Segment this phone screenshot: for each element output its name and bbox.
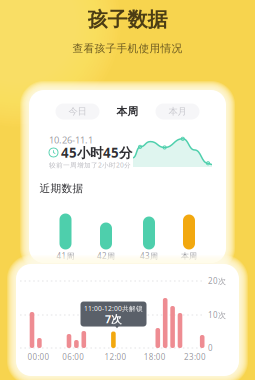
staticText: 近期数据: [39, 182, 83, 195]
button[interactable]: 今日: [55, 103, 99, 119]
staticText: 孩子数据: [87, 7, 167, 32]
staticText: 00:00: [27, 352, 49, 362]
staticText: 查看孩子手机使用情况: [72, 42, 182, 55]
staticText: 本周: [116, 105, 138, 118]
staticText: 10次: [208, 310, 226, 320]
staticText: 41周: [56, 251, 74, 261]
staticText: 18:00: [144, 352, 166, 362]
staticText: 0: [208, 343, 213, 353]
staticText: 本月: [168, 106, 186, 117]
button[interactable]: 本周: [105, 103, 149, 119]
staticText: 45小时45分: [61, 144, 132, 161]
button[interactable]: 本月: [155, 103, 199, 119]
staticText: 23:00: [184, 352, 206, 362]
staticText: 本周: [181, 251, 197, 261]
staticText: 7次: [105, 312, 122, 326]
staticText: 今日: [68, 106, 86, 117]
staticText: 06:00: [62, 352, 84, 362]
staticText: 12:00: [104, 352, 126, 362]
staticText: 较前一周增加了2小时20分: [49, 161, 131, 169]
staticText: 42周: [97, 251, 115, 261]
staticText: 10.26-11.1: [49, 134, 93, 146]
staticText: 43周: [140, 251, 158, 261]
staticText: 11:00-12:00共解锁: [84, 304, 143, 313]
staticText: 20次: [208, 276, 226, 286]
